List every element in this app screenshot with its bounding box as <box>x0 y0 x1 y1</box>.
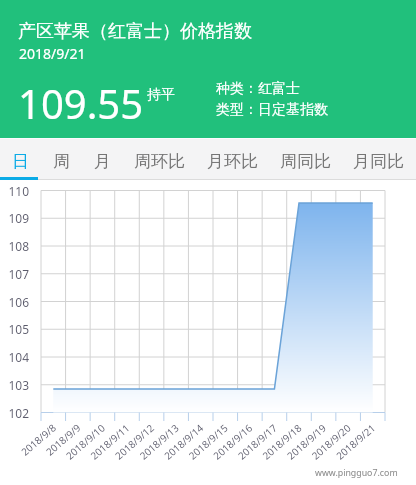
staticText: 日 <box>12 151 29 172</box>
staticText: 持平 <box>147 86 175 104</box>
staticText: 种类：红富士 <box>216 80 300 98</box>
staticText: 周 <box>53 151 70 172</box>
staticText: 产区苹果（红富士）价格指数 <box>18 20 252 43</box>
button[interactable]: 周环比 <box>123 138 196 179</box>
staticText: 周同比 <box>280 151 331 172</box>
button[interactable]: 日 <box>0 138 41 179</box>
button[interactable]: 周 <box>41 138 82 179</box>
staticText: 类型：日定基指数 <box>216 101 328 119</box>
staticText: 109.55 <box>18 76 144 130</box>
button[interactable]: 月环比 <box>196 138 269 179</box>
button[interactable]: 月同比 <box>342 138 415 179</box>
staticText: 周环比 <box>134 151 185 172</box>
button[interactable]: 周同比 <box>269 138 342 179</box>
staticText: 月同比 <box>353 151 404 172</box>
button[interactable]: 月 <box>82 138 123 179</box>
staticText: 月 <box>94 151 111 172</box>
staticText: 月环比 <box>207 151 258 172</box>
staticText: 2018/9/21 <box>19 44 86 63</box>
